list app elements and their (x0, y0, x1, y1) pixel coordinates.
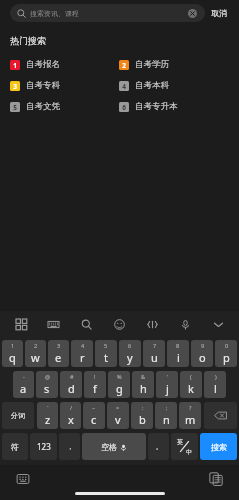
button[interactable]: 3 (10, 75, 119, 96)
button[interactable]: 1 (10, 54, 119, 75)
staticText: 6 (128, 342, 132, 349)
button[interactable]: ， (59, 433, 80, 460)
staticText: 自考专升本 (135, 101, 178, 112)
staticText: 0 (225, 342, 229, 349)
button[interactable]: 3 (48, 340, 69, 367)
staticText: 6 (122, 103, 126, 112)
staticText: p (223, 350, 230, 365)
button[interactable]: ` (37, 402, 58, 429)
button[interactable]: 6 (119, 340, 141, 367)
button[interactable]: 6 (119, 96, 229, 117)
staticText: 2 (34, 342, 38, 349)
button[interactable]: Text size (143, 315, 161, 333)
staticText: o (199, 350, 206, 365)
staticText: k (188, 381, 194, 396)
button[interactable]: ( (180, 371, 202, 398)
staticText: q (9, 350, 16, 365)
button[interactable]: ~ (83, 402, 105, 429)
button[interactable]: & (132, 371, 154, 398)
button[interactable]: Keyboard settings (14, 470, 32, 488)
button[interactable]: 2 (25, 340, 46, 367)
staticText: 4 (122, 82, 126, 91)
staticText: 符 (11, 442, 19, 452)
button[interactable]: 。 (148, 433, 169, 460)
staticText: 3 (57, 342, 61, 349)
button[interactable]: 9 (191, 340, 213, 367)
button[interactable]: ? (179, 402, 201, 429)
button[interactable]: / (60, 402, 81, 429)
button[interactable]: ' (156, 371, 178, 398)
staticText: x (68, 412, 74, 427)
staticText: 。 (156, 443, 162, 451)
staticText: # (70, 373, 74, 380)
button[interactable]: # (60, 371, 82, 398)
staticText: 分词 (11, 411, 25, 420)
staticText: 英 (177, 438, 183, 446)
button[interactable]: 搜索资讯、课程 (10, 4, 205, 22)
button[interactable]: 1 (2, 340, 23, 367)
staticText: n (163, 412, 170, 427)
button[interactable]: - (13, 371, 34, 398)
button[interactable]: 搜索 (200, 433, 237, 460)
button[interactable]: Panels (12, 315, 30, 333)
staticText: ， (67, 443, 73, 451)
staticText: 5 (104, 342, 108, 349)
button[interactable]: 4 (119, 75, 229, 96)
staticText: ' (167, 373, 169, 380)
button[interactable]: Hide keyboard (209, 315, 227, 333)
staticText: 123 (37, 441, 51, 452)
staticText: @ (45, 373, 50, 380)
button[interactable]: 5 (10, 96, 119, 117)
button[interactable]: 取消 (205, 0, 229, 26)
staticText: ! (94, 373, 96, 380)
button[interactable]: 2 (119, 54, 229, 75)
button[interactable]: Switch English Chinese (171, 433, 198, 460)
staticText: 5 (13, 103, 17, 112)
button[interactable]: 空格 (82, 433, 146, 460)
staticText: 搜索资讯、课程 (30, 9, 79, 18)
staticText: 1 (13, 61, 17, 70)
button[interactable]: 分词 (2, 402, 34, 429)
staticText: w (31, 350, 40, 365)
button[interactable]: 8 (167, 340, 189, 367)
button[interactable]: 符 (2, 433, 28, 460)
staticText: ? (189, 404, 192, 411)
staticText: ~ (92, 404, 96, 411)
button[interactable]: 7 (143, 340, 165, 367)
button[interactable]: 4 (71, 340, 93, 367)
button[interactable]: ) (204, 371, 226, 398)
staticText: ; (166, 404, 168, 411)
staticText: % (117, 373, 122, 380)
button[interactable]: ; (155, 402, 177, 429)
staticText: / (70, 404, 73, 411)
button[interactable]: Search (77, 315, 95, 333)
staticText: m (185, 412, 196, 427)
staticText: 中 (186, 448, 192, 456)
button[interactable]: 0 (215, 340, 237, 367)
button[interactable]: Clipboard (207, 470, 225, 488)
staticText: 取消 (211, 8, 227, 18)
button[interactable]: % (108, 371, 130, 398)
button[interactable]: Emoji (110, 315, 128, 333)
button[interactable]: ! (84, 371, 106, 398)
staticText: = (116, 404, 120, 411)
staticText: u (151, 350, 158, 365)
staticText: 自考文凭 (26, 101, 60, 112)
staticText: e (55, 350, 62, 365)
staticText: h (140, 381, 147, 396)
staticText: ( (190, 373, 192, 380)
staticText: y (127, 350, 133, 365)
button[interactable]: Keyboard (44, 315, 62, 333)
button[interactable]: : (131, 402, 153, 429)
staticText: : (142, 404, 144, 411)
staticText: & (141, 373, 146, 380)
button[interactable]: Clear (187, 8, 198, 19)
button[interactable]: Backspace (204, 402, 237, 429)
button[interactable]: 5 (95, 340, 117, 367)
staticText: a (20, 381, 27, 396)
button[interactable]: Voice input (176, 315, 194, 333)
button[interactable]: @ (36, 371, 58, 398)
staticText: 自考报名 (26, 59, 60, 70)
button[interactable]: 123 (30, 433, 57, 460)
button[interactable]: = (107, 402, 129, 429)
